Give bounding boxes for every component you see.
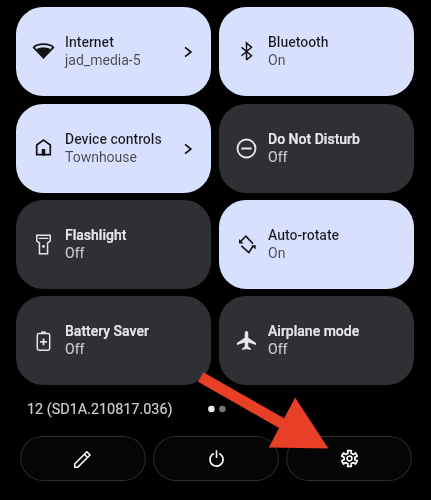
button[interactable]: Bluetooth: [219, 7, 414, 96]
staticText: Do Not Disturb: [268, 131, 360, 147]
button[interactable]: Device controls: [16, 104, 211, 193]
button[interactable]: Airplane mode: [219, 296, 414, 385]
button[interactable]: Internet: [16, 7, 211, 96]
staticText: Auto-rotate: [268, 227, 340, 243]
staticText: Airplane mode: [268, 323, 360, 339]
button[interactable]: Battery Saver: [16, 296, 211, 385]
staticText: Device controls: [65, 131, 162, 147]
button[interactable]: Auto-rotate: [219, 200, 414, 289]
staticText: Off: [65, 341, 85, 357]
staticText: Flashlight: [65, 227, 127, 243]
button[interactable]: Flashlight: [16, 200, 211, 289]
staticText: Townhouse: [65, 149, 137, 165]
staticText: Off: [268, 149, 288, 165]
staticText: On: [268, 52, 286, 68]
staticText: Internet: [65, 34, 114, 50]
staticText: Battery Saver: [65, 323, 149, 339]
staticText: Off: [268, 341, 288, 357]
button[interactable]: Do Not Disturb: [219, 104, 414, 193]
staticText: Off: [65, 245, 85, 261]
staticText: 12 (SD1A.210817.036): [27, 401, 173, 418]
button[interactable]: Edit tiles: [20, 436, 146, 481]
button[interactable]: Power: [153, 436, 279, 481]
staticText: Bluetooth: [268, 34, 329, 50]
staticText: jad_media-5: [65, 52, 141, 68]
button[interactable]: Settings: [286, 436, 412, 481]
staticText: On: [268, 245, 286, 261]
